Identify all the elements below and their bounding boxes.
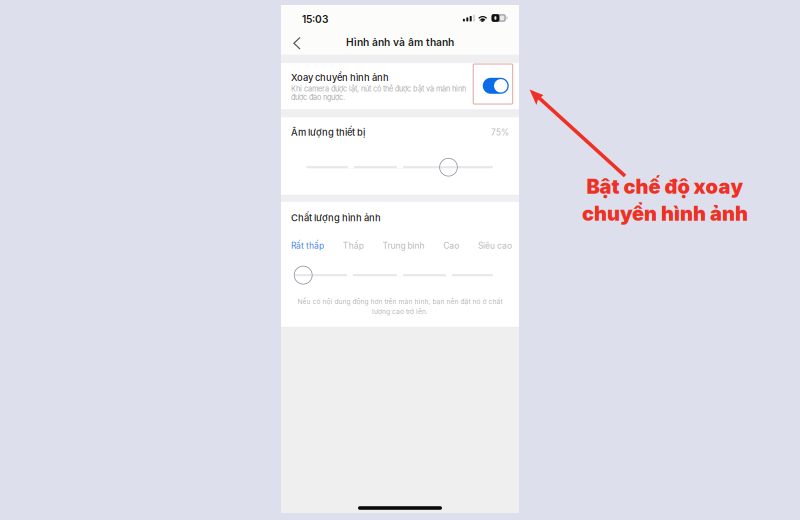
staticText: Khi camera được lật, nút có thể được bật… [291,84,466,93]
button[interactable]: Trung bình [382,241,424,251]
staticText: Xoay chuyển hình ảnh [291,72,389,83]
button[interactable]: Cao [443,241,459,251]
staticText: Nếu có nội dung động hơn trên màn hình, … [297,298,502,305]
staticText: Hình ảnh và âm thanh [346,36,454,48]
staticText: Thấp [343,241,364,251]
staticText: 15:03 [302,13,328,25]
staticText: Âm lượng thiết bị [291,127,365,138]
button[interactable]: Rất thấp [291,241,324,251]
button[interactable]: Thấp [343,241,364,251]
staticText: Rất thấp [291,241,324,251]
staticText: Siêu cao [478,241,512,251]
button[interactable]: Rất thấp [281,266,519,284]
staticText: Trung bình [382,241,424,251]
staticText: Bật chế độ xoay [586,175,743,198]
staticText: được đảo ngược. [291,93,345,102]
button[interactable]: Xoay chuyển hình ảnh [473,64,513,104]
staticText: 75% [491,128,509,137]
button[interactable]: Quay lại [288,29,306,54]
button[interactable]: 75% [281,158,519,176]
button[interactable]: Siêu cao [478,241,512,251]
staticText: Chất lượng hình ảnh [291,213,381,223]
staticText: chuyển hình ảnh [582,202,748,225]
staticText: lượng cao trở lên. [372,308,428,315]
staticText: Cao [443,241,459,251]
